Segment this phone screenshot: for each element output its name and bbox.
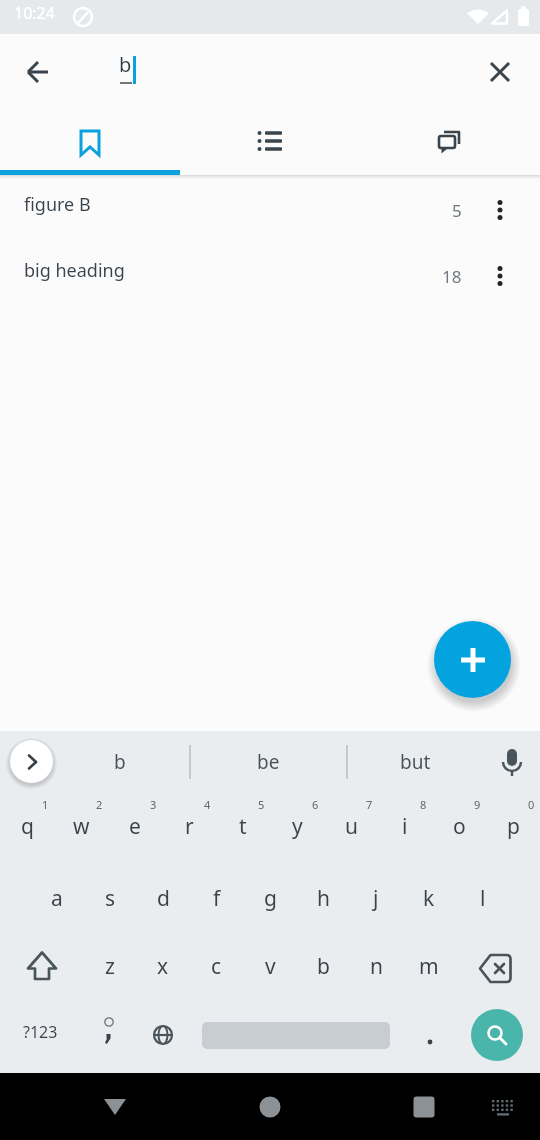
staticText: h <box>317 884 330 913</box>
button[interactable] <box>476 48 524 96</box>
staticText: 1 <box>42 797 49 812</box>
button[interactable]: l <box>457 868 509 928</box>
staticText: 9 <box>474 797 481 812</box>
button[interactable]: t <box>217 796 269 856</box>
staticText: but <box>400 749 431 775</box>
staticText: figure B <box>24 192 91 217</box>
staticText: 2 <box>96 797 103 812</box>
staticText: y <box>292 812 303 841</box>
button[interactable] <box>478 254 522 298</box>
staticText: b <box>119 51 132 78</box>
button[interactable] <box>360 110 540 175</box>
button[interactable] <box>10 740 53 783</box>
button[interactable]: a <box>31 868 83 928</box>
button[interactable]: but <box>355 737 475 787</box>
button[interactable]: g <box>244 868 296 928</box>
staticText: 7 <box>366 797 373 812</box>
staticText: u <box>345 812 358 841</box>
button[interactable]: v <box>244 936 296 996</box>
staticText: t <box>239 812 247 841</box>
staticText: 8 <box>420 797 427 812</box>
button[interactable]: y <box>271 796 323 856</box>
staticText: s <box>105 884 116 913</box>
staticText: g <box>264 884 277 913</box>
button[interactable] <box>390 1073 458 1140</box>
staticText: j <box>373 884 379 913</box>
button[interactable]: x <box>137 936 189 996</box>
staticText: c <box>211 952 222 981</box>
staticText: f <box>213 884 221 913</box>
button[interactable]: w <box>55 796 107 856</box>
button[interactable]: r <box>163 796 215 856</box>
staticText: 0 <box>528 797 535 812</box>
button[interactable] <box>479 1073 527 1140</box>
staticText: 5 <box>452 199 462 222</box>
button[interactable]: n <box>350 936 402 996</box>
staticText: z <box>105 952 115 981</box>
staticText: ?123 <box>23 1021 58 1043</box>
button[interactable] <box>81 1073 149 1140</box>
button[interactable]: be <box>208 737 328 787</box>
button[interactable]: big heading <box>0 243 540 309</box>
button[interactable]: o <box>433 796 485 856</box>
button[interactable]: z <box>84 936 136 996</box>
staticText: p <box>507 812 520 841</box>
button[interactable] <box>14 48 62 96</box>
staticText: l <box>480 884 486 913</box>
staticText: d <box>157 884 170 913</box>
button[interactable]: i <box>379 796 431 856</box>
staticText: 4 <box>204 797 211 812</box>
staticText: be <box>257 749 280 775</box>
button[interactable]: b <box>297 936 349 996</box>
staticText: 5 <box>258 797 265 812</box>
button[interactable]: k <box>403 868 455 928</box>
staticText: n <box>370 952 383 981</box>
staticText: 18 <box>442 265 462 288</box>
staticText: 3 <box>150 797 157 812</box>
button[interactable] <box>478 188 522 232</box>
staticText: i <box>402 812 408 841</box>
staticText: b <box>317 952 330 981</box>
button[interactable]: h <box>297 868 349 928</box>
button[interactable] <box>0 110 180 175</box>
staticText: m <box>419 952 439 981</box>
button[interactable]: f <box>191 868 243 928</box>
button[interactable] <box>236 1073 304 1140</box>
button[interactable] <box>471 1009 523 1061</box>
staticText: a <box>51 884 63 913</box>
staticText: 10:24 <box>14 2 55 24</box>
staticText: q <box>21 812 34 841</box>
button[interactable]: b <box>60 737 180 787</box>
button[interactable]: d <box>137 868 189 928</box>
staticText: x <box>157 952 169 981</box>
button[interactable] <box>434 621 511 698</box>
staticText: k <box>423 884 435 913</box>
staticText: 6 <box>312 797 319 812</box>
button[interactable]: c <box>190 936 242 996</box>
staticText: b <box>114 749 126 775</box>
staticText: big heading <box>24 258 125 283</box>
button[interactable]: figure B <box>0 177 540 243</box>
button[interactable]: m <box>403 936 455 996</box>
staticText: w <box>73 812 90 841</box>
button[interactable]: e <box>109 796 161 856</box>
staticText: v <box>265 952 276 981</box>
staticText: r <box>185 812 194 841</box>
button[interactable]: s <box>84 868 136 928</box>
staticText: e <box>129 812 141 841</box>
button[interactable] <box>180 110 360 175</box>
button[interactable]: q <box>1 796 53 856</box>
staticText: o <box>453 812 466 841</box>
button[interactable]: p <box>487 796 539 856</box>
button[interactable]: u <box>325 796 377 856</box>
button[interactable]: j <box>350 868 402 928</box>
